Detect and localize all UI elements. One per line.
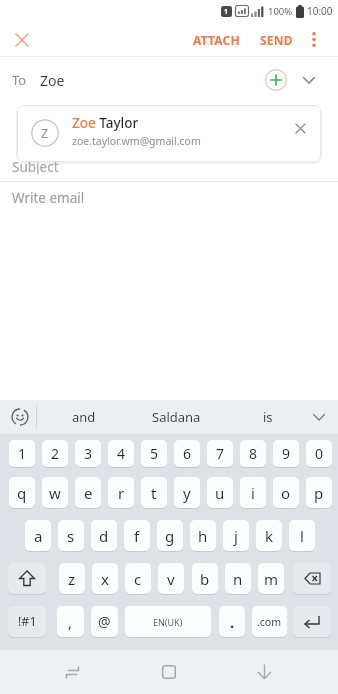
- staticText: 100%: [268, 5, 293, 18]
- staticText: Subject: [12, 158, 59, 174]
- button[interactable]: [8, 26, 36, 54]
- button[interactable]: 1: [9, 440, 35, 467]
- button[interactable]: 5: [141, 440, 167, 467]
- staticText: Zoe Taylor: [72, 114, 139, 131]
- button[interactable]: ATTACH: [189, 22, 244, 57]
- button[interactable]: [264, 68, 288, 92]
- button[interactable]: s: [58, 520, 84, 551]
- staticText: z: [68, 569, 76, 589]
- button[interactable]: h: [190, 520, 216, 551]
- staticText: 10:00: [307, 4, 333, 18]
- staticText: u: [215, 483, 225, 503]
- button[interactable]: 8: [240, 440, 266, 467]
- button[interactable]: [297, 68, 321, 92]
- button[interactable]: k: [256, 520, 282, 551]
- staticText: 0: [315, 444, 324, 463]
- button[interactable]: c: [125, 563, 151, 594]
- button[interactable]: 9: [273, 440, 299, 467]
- button[interactable]: i: [240, 477, 266, 508]
- staticText: 2: [51, 444, 60, 463]
- staticText: l: [300, 526, 304, 546]
- staticText: Z: [41, 125, 49, 142]
- staticText: and: [72, 408, 96, 426]
- staticText: q: [17, 483, 27, 503]
- staticText: g: [165, 526, 175, 546]
- button[interactable]: 2: [42, 440, 68, 467]
- staticText: 4: [117, 444, 126, 463]
- button[interactable]: and: [59, 400, 109, 434]
- staticText: j: [234, 526, 238, 546]
- button[interactable]: [293, 606, 331, 637]
- staticText: a: [34, 526, 43, 546]
- staticText: y: [183, 483, 191, 503]
- button[interactable]: @: [91, 606, 118, 637]
- staticText: Write email: [12, 189, 85, 205]
- button[interactable]: [289, 117, 311, 139]
- button[interactable]: 6: [174, 440, 200, 467]
- staticText: SEND: [260, 32, 293, 48]
- staticText: 1: [224, 7, 229, 17]
- staticText: i: [251, 483, 255, 503]
- staticText: !#1: [18, 613, 37, 630]
- button[interactable]: 4: [108, 440, 134, 467]
- button[interactable]: .com: [252, 606, 287, 637]
- button[interactable]: r: [108, 477, 134, 508]
- staticText: zoe.taylor.wm@gmail.com: [72, 134, 201, 148]
- button[interactable]: 0: [306, 440, 332, 467]
- staticText: 1: [18, 444, 27, 463]
- button[interactable]: is: [250, 400, 285, 434]
- button[interactable]: [151, 654, 187, 690]
- button[interactable]: o: [273, 477, 299, 508]
- staticText: ATTACH: [193, 32, 240, 48]
- button[interactable]: l: [289, 520, 315, 551]
- staticText: .: [230, 612, 235, 632]
- button[interactable]: [302, 22, 326, 57]
- button[interactable]: q: [9, 477, 35, 508]
- button[interactable]: [293, 563, 331, 594]
- button[interactable]: n: [225, 563, 251, 594]
- button[interactable]: !#1: [8, 606, 46, 637]
- button[interactable]: EN(UK): [125, 606, 211, 637]
- button[interactable]: [305, 400, 332, 434]
- button[interactable]: [246, 654, 282, 690]
- button[interactable]: j: [223, 520, 249, 551]
- button[interactable]: m: [258, 563, 284, 594]
- staticText: m: [264, 569, 279, 589]
- staticText: n: [233, 569, 243, 589]
- staticText: t: [151, 483, 157, 503]
- button[interactable]: d: [91, 520, 117, 551]
- button[interactable]: f: [124, 520, 150, 551]
- button[interactable]: u: [207, 477, 233, 508]
- staticText: x: [101, 569, 109, 589]
- staticText: o: [281, 483, 291, 503]
- button[interactable]: Z: [17, 105, 321, 162]
- staticText: Zoe: [40, 71, 65, 90]
- button[interactable]: SEND: [254, 22, 298, 57]
- button[interactable]: y: [174, 477, 200, 508]
- button[interactable]: p: [306, 477, 332, 508]
- button[interactable]: z: [59, 563, 85, 594]
- staticText: f: [134, 526, 140, 546]
- button[interactable]: .: [219, 606, 245, 637]
- staticText: To: [12, 71, 27, 89]
- button[interactable]: [8, 563, 46, 594]
- button[interactable]: 7: [207, 440, 233, 467]
- button[interactable]: b: [192, 563, 218, 594]
- button[interactable]: v: [158, 563, 184, 594]
- button[interactable]: [54, 654, 90, 690]
- button[interactable]: e: [75, 477, 101, 508]
- staticText: v: [167, 569, 175, 589]
- button[interactable]: a: [25, 520, 51, 551]
- button[interactable]: x: [92, 563, 118, 594]
- staticText: 8: [249, 444, 258, 463]
- button[interactable]: Saldana: [146, 400, 206, 434]
- button[interactable]: w: [42, 477, 68, 508]
- staticText: .com: [257, 615, 282, 629]
- button[interactable]: g: [157, 520, 183, 551]
- button[interactable]: 3: [75, 440, 101, 467]
- staticText: 6: [183, 444, 192, 463]
- button[interactable]: t: [141, 477, 167, 508]
- staticText: r: [118, 483, 125, 503]
- button[interactable]: [6, 403, 34, 431]
- button[interactable]: ,: [57, 606, 84, 637]
